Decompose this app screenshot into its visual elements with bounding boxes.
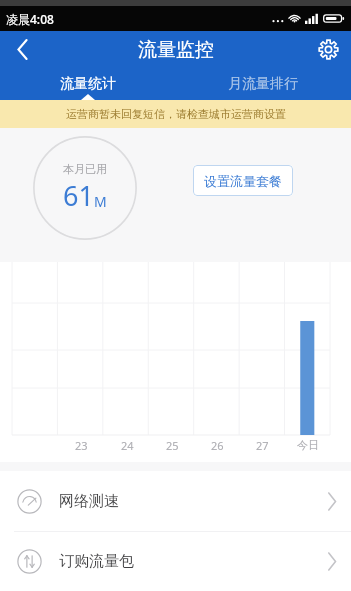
staticText: 网络测速 bbox=[59, 492, 119, 511]
staticText: 26 bbox=[211, 438, 224, 453]
staticText: 27 bbox=[256, 438, 269, 453]
staticText: M bbox=[94, 192, 107, 211]
staticText: 设置流量套餐 bbox=[204, 173, 282, 189]
staticText: 流量监控 bbox=[138, 38, 214, 62]
button[interactable]: 设置流量套餐 bbox=[193, 165, 293, 196]
staticText: 61 bbox=[63, 177, 94, 214]
button[interactable]: Settings bbox=[305, 31, 351, 68]
staticText: 24 bbox=[121, 438, 134, 453]
staticText: 今日 bbox=[297, 438, 319, 452]
button[interactable]: 订购流量包 bbox=[0, 532, 351, 591]
button[interactable]: Back bbox=[0, 31, 46, 68]
staticText: 凌晨4:08 bbox=[6, 11, 54, 27]
button[interactable]: 网络测速 bbox=[0, 471, 351, 531]
button[interactable]: 流量统计 bbox=[0, 68, 175, 100]
staticText: 运营商暂未回复短信，请检查城市运营商设置 bbox=[66, 107, 286, 121]
staticText: 本月已用 bbox=[63, 162, 107, 176]
staticText: 订购流量包 bbox=[59, 552, 134, 571]
staticText: 23 bbox=[75, 438, 88, 453]
button[interactable]: 月流量排行 bbox=[175, 68, 351, 100]
staticText: 月流量排行 bbox=[228, 75, 298, 93]
staticText: 流量统计 bbox=[60, 75, 116, 93]
staticText: 25 bbox=[166, 438, 179, 453]
